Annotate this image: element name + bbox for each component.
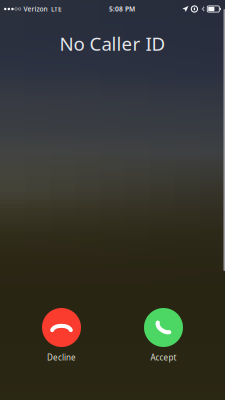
staticText: LTE <box>51 5 62 13</box>
staticText: No Caller ID <box>59 31 165 56</box>
button[interactable]: Accept <box>124 308 202 360</box>
staticText: 5:08 PM <box>109 5 135 13</box>
staticText: Decline <box>47 352 76 363</box>
staticText: Verizon <box>23 5 47 13</box>
button[interactable]: Decline <box>22 308 100 360</box>
staticText: Accept <box>150 352 176 363</box>
